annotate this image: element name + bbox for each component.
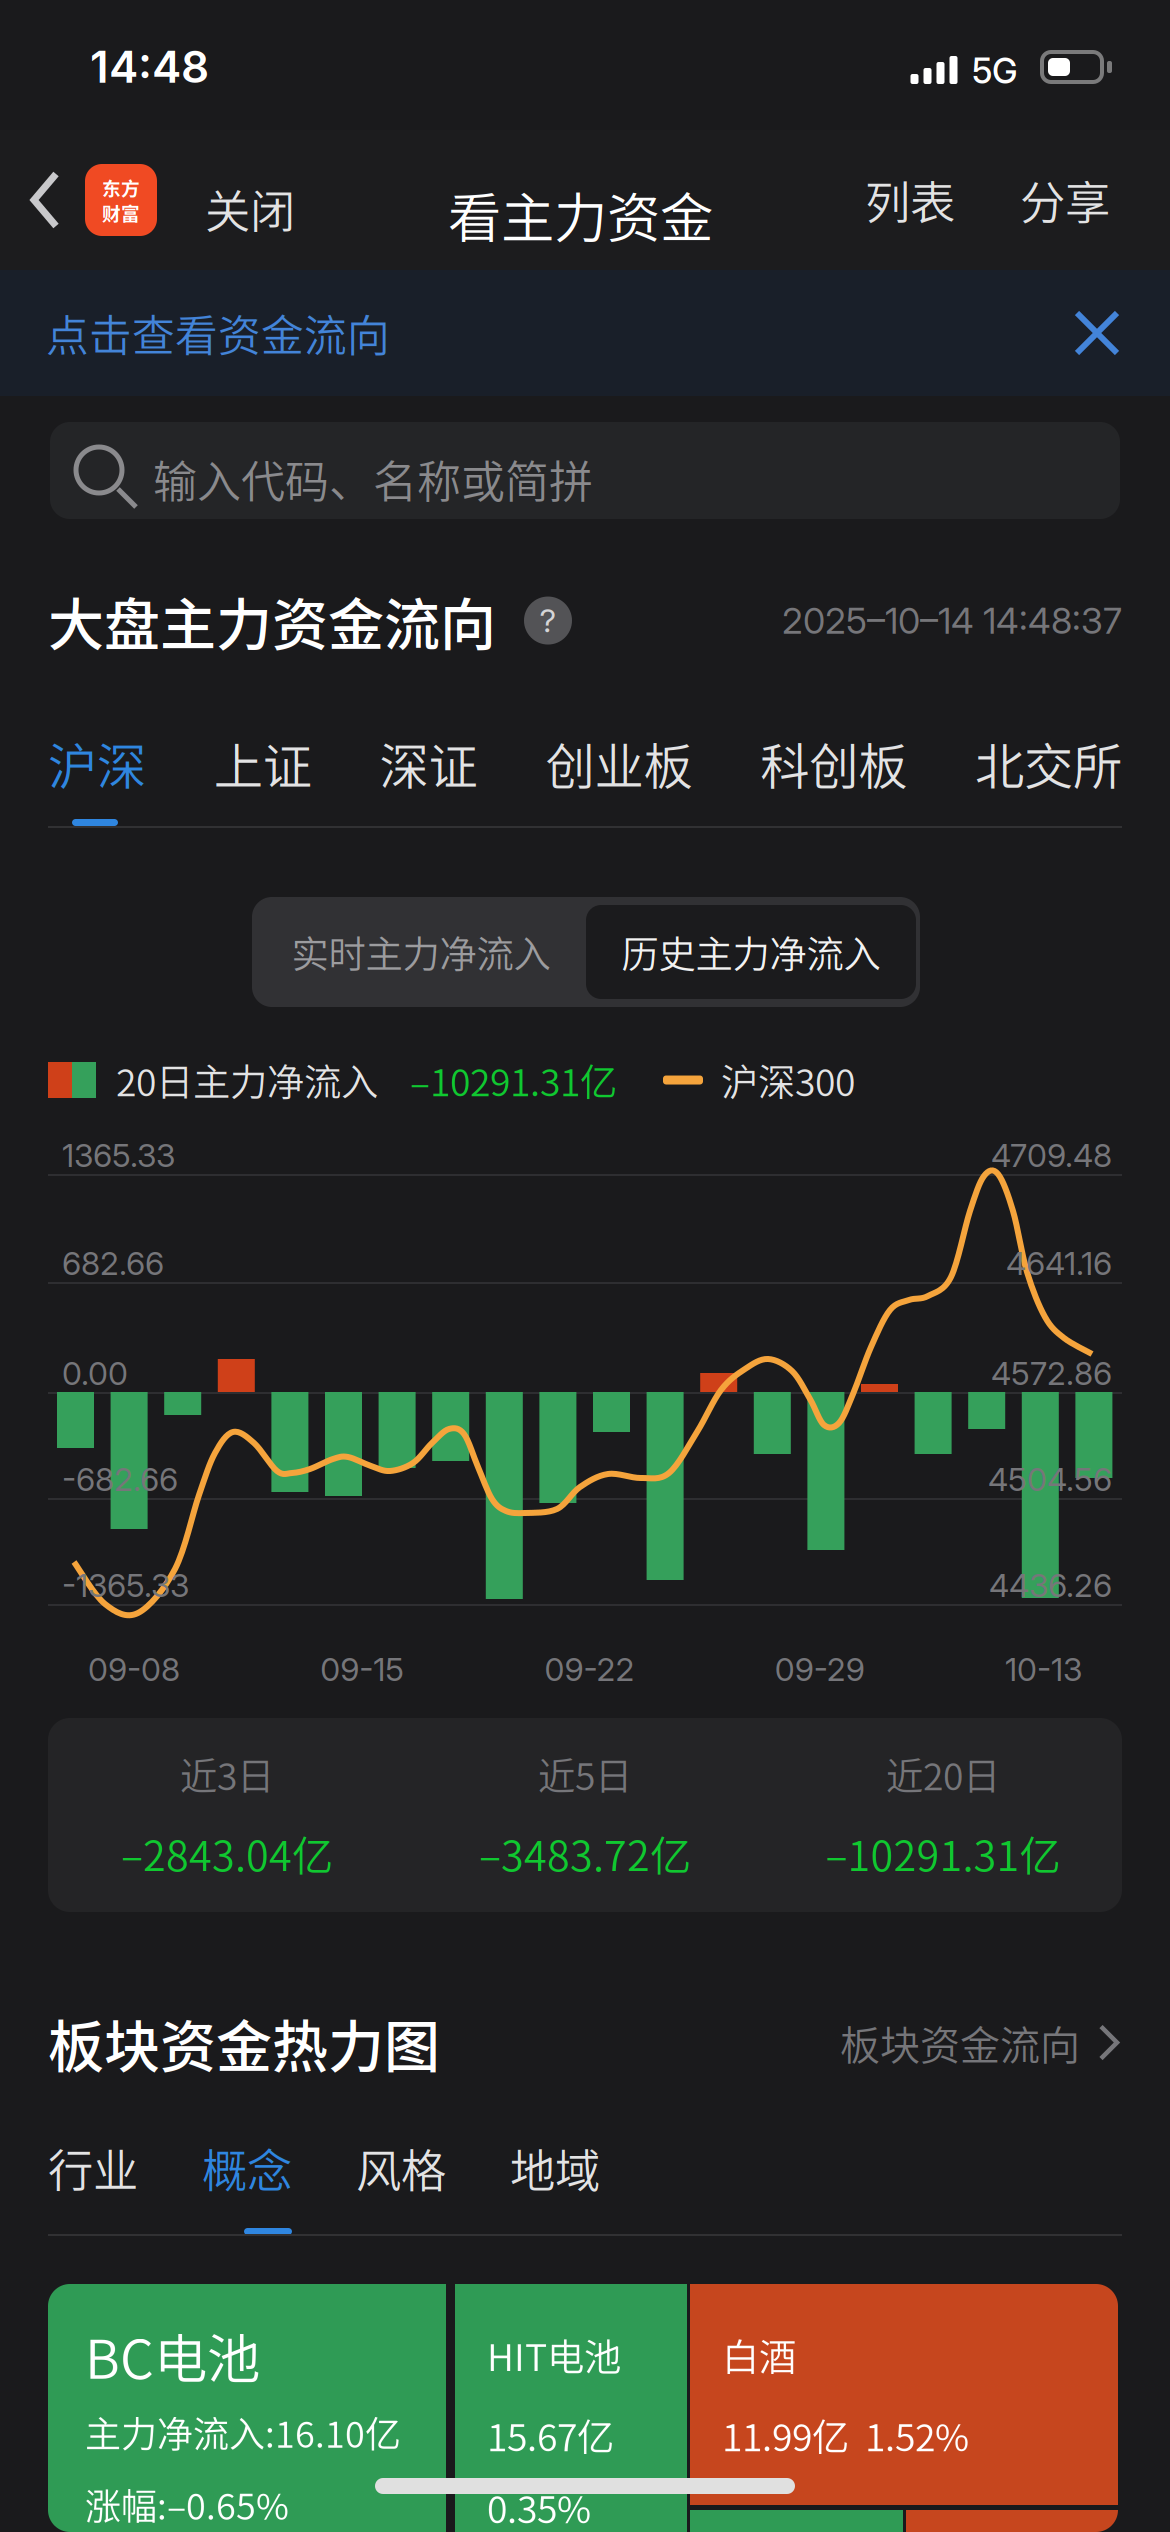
staticText: 沪深: [48, 727, 146, 799]
staticText: 行业: [48, 2135, 138, 2201]
staticText: 11.99亿 1.52%: [722, 2408, 969, 2462]
staticText: BC电池: [85, 2317, 260, 2394]
staticText: 看主力资金: [448, 176, 713, 253]
button[interactable]: 输入代码、名称或简拼: [50, 422, 1120, 519]
staticText: 09-08: [88, 1650, 180, 1689]
staticText: 4436.26: [989, 1566, 1112, 1605]
staticText: 输入代码、名称或简拼: [153, 447, 593, 511]
button[interactable]: 历史主力净流入: [586, 905, 916, 999]
staticText: 列表: [865, 167, 955, 233]
button[interactable]: 说明: [496, 596, 572, 644]
button[interactable]: 实时主力净流入: [256, 905, 586, 999]
staticText: 09-22: [544, 1650, 634, 1689]
staticText: –3483.72亿: [479, 1823, 691, 1883]
button[interactable]: 科创板: [760, 727, 907, 799]
staticText: –10291.31亿: [410, 1053, 617, 1107]
staticText: 沪深300: [721, 1053, 855, 1107]
staticText: 历史主力净流入: [621, 925, 880, 979]
button[interactable]: 沪深: [48, 727, 146, 799]
button[interactable]: 列表: [855, 130, 965, 270]
staticText: HIT电池: [487, 2328, 621, 2382]
staticText: -682.66: [62, 1460, 178, 1499]
staticText: 大盘主力资金流向: [48, 580, 496, 661]
staticText: 分享: [1020, 167, 1110, 233]
staticText: 风格: [356, 2135, 446, 2201]
staticText: 科创板: [760, 727, 907, 799]
button[interactable]: 深证: [380, 727, 478, 799]
staticText: 关闭: [205, 176, 295, 242]
button[interactable]: 上证: [214, 727, 312, 799]
button[interactable]: 行业: [48, 2135, 138, 2201]
staticText: 北交所: [975, 727, 1122, 799]
button[interactable]: 板块资金流向: [840, 2014, 1122, 2071]
staticText: 20日主力净流入: [116, 1053, 378, 1107]
button[interactable]: 白酒: [690, 2284, 1118, 2505]
staticText: 4572.86: [991, 1354, 1112, 1393]
staticText: 深证: [380, 727, 478, 799]
staticText: 上证: [214, 727, 312, 799]
staticText: 2025–10–14 14:48:37: [782, 599, 1122, 642]
staticText: 0.00: [62, 1354, 128, 1393]
staticText: 板块资金流向: [840, 2014, 1080, 2071]
button[interactable]: 创业板: [545, 727, 692, 799]
staticText: 15.67亿: [487, 2408, 614, 2462]
button[interactable]: 概念: [202, 2135, 292, 2201]
staticText: ?: [539, 601, 556, 640]
staticText: 14:48: [90, 40, 209, 93]
staticText: 0.35%: [487, 2480, 591, 2532]
button[interactable]: 风格: [356, 2135, 446, 2201]
staticText: –10291.31亿: [825, 1823, 1060, 1883]
button[interactable]: 北交所: [975, 727, 1122, 799]
staticText: 概念: [202, 2135, 292, 2201]
staticText: 东方: [102, 174, 140, 201]
staticText: 主力净流入:16.10亿: [85, 2406, 401, 2458]
staticText: 地域: [510, 2135, 600, 2201]
button[interactable]: 地域: [510, 2135, 600, 2201]
button[interactable]: HIT电池: [455, 2284, 687, 2532]
staticText: 09-15: [320, 1650, 404, 1689]
button[interactable]: BC电池: [48, 2284, 446, 2532]
staticText: 4504.56: [988, 1460, 1112, 1499]
staticText: 09-29: [775, 1650, 865, 1689]
staticText: 近5日: [538, 1747, 632, 1801]
staticText: 1365.33: [62, 1136, 175, 1175]
staticText: –2843.04亿: [121, 1823, 333, 1883]
staticText: 4709.48: [991, 1136, 1112, 1175]
staticText: 财富: [102, 199, 140, 226]
staticText: 创业板: [545, 727, 692, 799]
staticText: 板块资金热力图: [48, 2002, 440, 2083]
staticText: 涨幅:–0.65%: [85, 2478, 289, 2530]
button[interactable]: 点击查看资金流向: [0, 270, 1170, 396]
staticText: 4641.16: [1006, 1244, 1112, 1283]
staticText: 白酒: [722, 2328, 796, 2382]
staticText: 10-13: [1005, 1650, 1082, 1689]
staticText: 实时主力净流入: [291, 925, 550, 979]
staticText: 682.66: [62, 1244, 164, 1283]
staticText: 近20日: [886, 1747, 1000, 1801]
staticText: 点击查看资金流向: [46, 302, 390, 364]
staticText: 5G: [972, 50, 1018, 92]
button[interactable]: 返回 关闭: [0, 130, 270, 270]
staticText: 近3日: [180, 1747, 274, 1801]
button[interactable]: 分享: [1010, 130, 1120, 270]
staticText: -1365.33: [62, 1566, 189, 1605]
